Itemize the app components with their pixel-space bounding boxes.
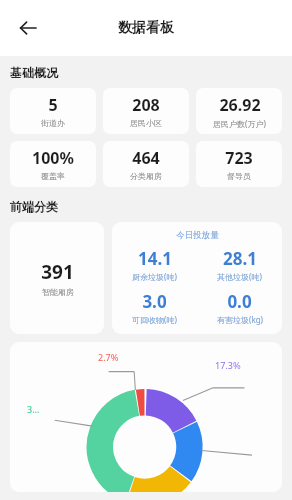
staticText: 14.1 [138,247,172,270]
button[interactable]: 5 [10,88,96,134]
staticText: 5 [48,94,58,116]
staticText: 208 [132,94,160,116]
staticText: 391 [41,259,74,285]
button[interactable]: Back [8,8,48,48]
staticText: 前端分类 [10,199,58,214]
staticText: 居民户数(万户) [213,118,266,129]
button[interactable]: 391 [10,222,104,334]
staticText: 街道办 [41,118,65,128]
staticText: 其他垃圾(吨) [217,271,262,282]
staticText: 可回收物(吨) [132,314,177,325]
button[interactable]: 今日投放量 [112,222,282,334]
button[interactable]: 723 [196,141,282,187]
staticText: 0.0 [227,290,252,313]
staticText: 厨余垃圾(吨) [132,271,177,282]
staticText: 17.3% [215,359,241,371]
staticText: 有害垃圾(kg) [217,314,263,325]
staticText: 基础概况 [10,65,58,80]
staticText: 723 [225,147,253,169]
button[interactable]: 17.3% [10,342,282,492]
staticText: 3... [27,403,40,415]
staticText: 分类厢房 [130,171,162,181]
staticText: 督导员 [227,171,251,181]
staticText: 今日投放量 [176,230,219,241]
staticText: 覆盖率 [41,171,65,181]
staticText: 28.1 [223,247,257,270]
staticText: 3.0 [142,290,167,313]
button[interactable]: 26.92 [196,88,282,134]
staticText: 智能厢房 [42,287,74,297]
staticText: 26.92 [219,94,261,116]
staticText: 居民小区 [130,118,162,128]
button[interactable]: 100% [10,141,96,187]
staticText: 464 [132,147,160,169]
button[interactable]: 208 [103,88,189,134]
staticText: 100% [32,147,74,169]
staticText: 2.7% [98,351,119,363]
staticText: 数据看板 [118,19,174,37]
button[interactable]: 464 [103,141,189,187]
